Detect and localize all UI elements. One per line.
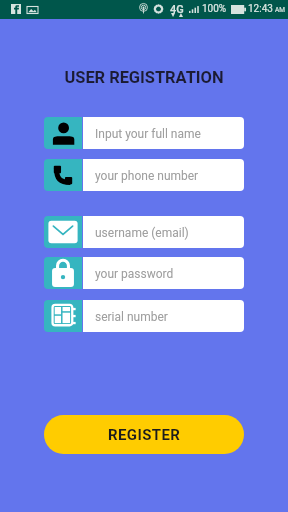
button[interactable]: Input your full name [44, 117, 244, 149]
button[interactable]: your phone number [44, 159, 244, 191]
staticText: serial number [95, 310, 168, 324]
button[interactable]: your password [44, 257, 244, 289]
staticText: REGISTER [108, 426, 181, 444]
staticText: 100% [202, 3, 227, 15]
staticText: AM [275, 6, 285, 14]
staticText: 4G [170, 3, 184, 16]
button[interactable]: serial number [44, 300, 244, 332]
button[interactable]: REGISTER [44, 415, 244, 454]
staticText: 12:43 [248, 3, 273, 15]
staticText: USER REGISTRATION [0, 68, 288, 87]
staticText: your phone number [95, 169, 199, 183]
staticText: Input your full name [95, 127, 201, 141]
button[interactable]: username (email) [44, 216, 244, 248]
staticText: username (email) [95, 226, 189, 240]
staticText: your password [95, 267, 174, 281]
